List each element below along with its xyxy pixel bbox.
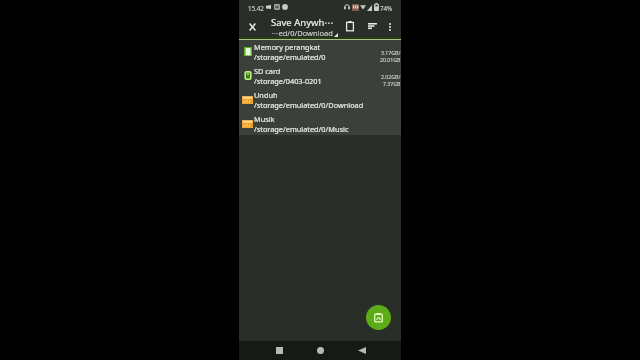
button[interactable]: More options (382, 19, 398, 35)
staticText: /storage/emulated/0 (254, 52, 326, 62)
button[interactable]: Close (244, 19, 260, 35)
button[interactable]: Recents (270, 341, 289, 360)
staticText: Unduh (254, 90, 278, 100)
button[interactable]: Back (352, 341, 371, 360)
button[interactable]: Memory perangkat (239, 40, 401, 64)
staticText: 20.01GB (380, 56, 401, 63)
staticText: 2.02GB/ (381, 73, 401, 80)
staticText: ⋯ed/0/Download (271, 28, 333, 38)
button[interactable]: SD card (239, 64, 401, 88)
staticText: /storage/0403-0201 (254, 76, 322, 86)
staticText: 15.42 (248, 4, 264, 12)
button[interactable]: Sort (363, 17, 381, 35)
staticText: Save Anywh⋯ (271, 16, 334, 29)
staticText: 3.17GB/ (381, 49, 401, 56)
staticText: /storage/emulated/0/Download (254, 100, 364, 110)
staticText: 74% (380, 4, 393, 12)
button[interactable]: Home (311, 341, 330, 360)
button[interactable]: Musik (239, 112, 401, 136)
staticText: Musik (254, 114, 275, 124)
button[interactable]: Clipboard (341, 17, 359, 35)
button[interactable]: Unduh (239, 88, 401, 112)
button[interactable]: Paste (366, 305, 391, 330)
staticText: 7.37GB (383, 80, 401, 87)
staticText: SD card (254, 66, 281, 76)
staticText: /storage/emulated/0/Music (254, 124, 349, 134)
staticText: Memory perangkat (254, 42, 321, 52)
